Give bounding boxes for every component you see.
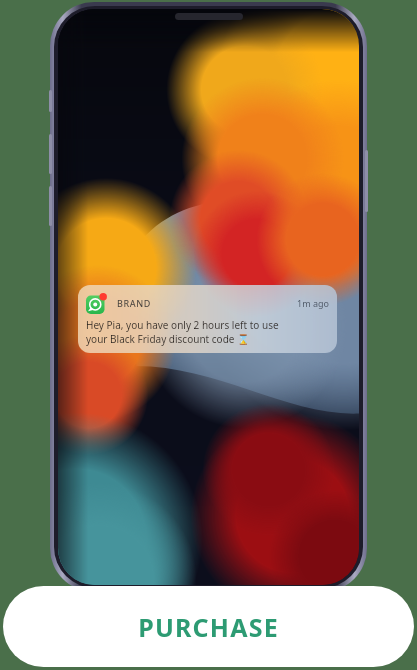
button[interactable]: Purchase — [3, 586, 414, 667]
staticText: BRAND — [117, 297, 152, 309]
staticText: PURCHASE — [138, 610, 279, 644]
staticText: Hey Pia, you have only 2 hours left to u… — [86, 318, 279, 346]
staticText: 1m ago — [297, 297, 329, 309]
button[interactable]: BRAND — [78, 285, 337, 353]
